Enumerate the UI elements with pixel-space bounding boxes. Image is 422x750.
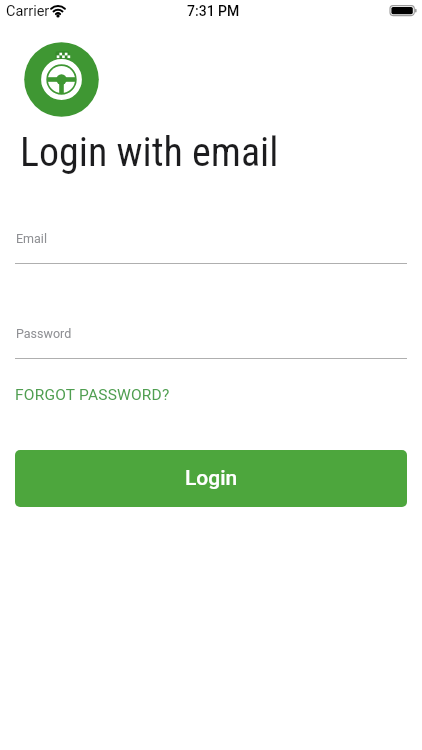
- staticText: Carrier: [6, 3, 50, 20]
- staticText: Password: [16, 326, 72, 341]
- button[interactable]: Login: [15, 450, 407, 507]
- button[interactable]: FORGOT PASSWORD?: [15, 386, 170, 404]
- button[interactable]: Password: [15, 323, 407, 363]
- staticText: Login: [185, 466, 238, 491]
- button[interactable]: Email: [15, 228, 407, 268]
- staticText: Login with email: [20, 129, 279, 176]
- button[interactable]: [24, 42, 99, 117]
- staticText: Email: [16, 231, 47, 246]
- staticText: 7:31 PM: [187, 3, 240, 19]
